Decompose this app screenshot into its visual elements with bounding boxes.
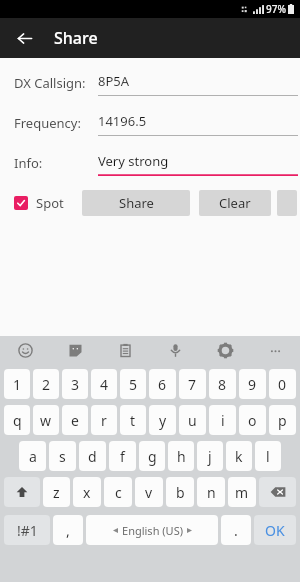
button[interactable]: d [79,441,106,471]
button[interactable]: 14196.5 [98,110,298,136]
button[interactable]: s [49,441,76,471]
button[interactable]: Clipboard [100,336,150,364]
button[interactable]: w [33,405,59,435]
staticText: d [88,447,97,466]
staticText: 5 [129,375,138,394]
staticText: English (US) [122,523,183,538]
staticText: 4 [100,375,109,394]
button[interactable]: q [4,405,30,435]
staticText: x [83,483,91,502]
button[interactable]: Space, English (US) [86,515,218,545]
staticText: !#1 [17,521,38,540]
staticText: a [29,447,37,466]
button[interactable]: Stickers [50,336,100,364]
staticText: 0 [278,375,287,394]
button[interactable]: j [197,441,223,471]
staticText: Frequency: [14,114,81,132]
button[interactable]: Very strong [98,150,298,176]
button[interactable]: Back [8,22,40,54]
staticText: Share [119,194,154,212]
staticText: Very strong [98,152,169,170]
staticText: m [235,483,249,502]
staticText: l [266,447,270,466]
staticText: b [176,483,185,502]
button[interactable]: c [104,477,132,507]
button[interactable]: Share [82,190,190,216]
staticText: 8 [218,375,227,394]
staticText: j [208,447,212,466]
staticText: k [235,447,243,466]
button[interactable]: 1 [4,369,30,399]
staticText: n [207,483,216,502]
button[interactable]: e [62,405,88,435]
staticText: r [101,411,107,430]
staticText: DX Callsign: [14,74,86,92]
staticText: u [188,411,197,430]
button[interactable]: a [19,441,46,471]
button[interactable]: 0 [269,369,296,399]
button[interactable]: 2 [33,369,59,399]
button[interactable]: 6 [149,369,176,399]
staticText: z [53,483,60,502]
button[interactable]: t [120,405,146,435]
staticText: y [159,411,167,430]
button[interactable]: More options [250,336,300,364]
staticText: 9 [248,375,257,394]
staticText: Spot [36,194,64,212]
staticText: t [130,411,136,430]
staticText: w [40,411,52,430]
button[interactable]: h [168,441,194,471]
button[interactable]: 9 [239,369,266,399]
staticText: p [278,411,287,430]
staticText: 7 [188,375,197,394]
button[interactable]: f [109,441,136,471]
staticText: 8P5A [98,72,130,90]
button[interactable]: OK [254,515,296,545]
button[interactable]: 8P5A [98,70,298,96]
button[interactable]: b [166,477,194,507]
button[interactable]: o [239,405,266,435]
button[interactable]: v [135,477,163,507]
staticText: h [177,447,186,466]
button[interactable]: Clear [199,190,271,216]
staticText: e [71,411,79,430]
button[interactable]: 5 [120,369,146,399]
staticText: 97% [266,2,286,16]
staticText: s [59,447,66,466]
staticText: 2 [42,375,51,394]
button[interactable]: g [139,441,165,471]
button[interactable]: Backspace [259,477,296,507]
button[interactable]: r [91,405,117,435]
button[interactable]: Shift [4,477,40,507]
button[interactable]: Voice input [150,336,200,364]
button[interactable]: , [53,515,83,545]
staticText: o [248,411,257,430]
button[interactable]: l [255,441,281,471]
staticText: . [234,521,238,540]
button[interactable]: k [226,441,252,471]
button[interactable]: x [73,477,101,507]
button[interactable]: y [149,405,176,435]
staticText: g [148,447,157,466]
button[interactable]: !#1 [4,515,50,545]
button[interactable]: z [43,477,70,507]
button[interactable]: Emoji [0,336,50,364]
button[interactable]: Settings [200,336,250,364]
staticText: Clear [219,194,251,212]
button[interactable]: u [179,405,206,435]
button[interactable]: . [221,515,251,545]
staticText: , [66,521,70,540]
button[interactable]: m [228,477,256,507]
button[interactable]: 3 [62,369,88,399]
staticText: Info: [14,154,43,172]
button[interactable]: Spot [14,194,64,212]
button[interactable]: n [197,477,225,507]
button[interactable]: 7 [179,369,206,399]
button[interactable]: i [209,405,236,435]
staticText: 6 [158,375,167,394]
staticText: c [115,483,122,502]
button[interactable]: 8 [209,369,236,399]
button[interactable]: p [269,405,296,435]
button[interactable]: 4 [91,369,117,399]
